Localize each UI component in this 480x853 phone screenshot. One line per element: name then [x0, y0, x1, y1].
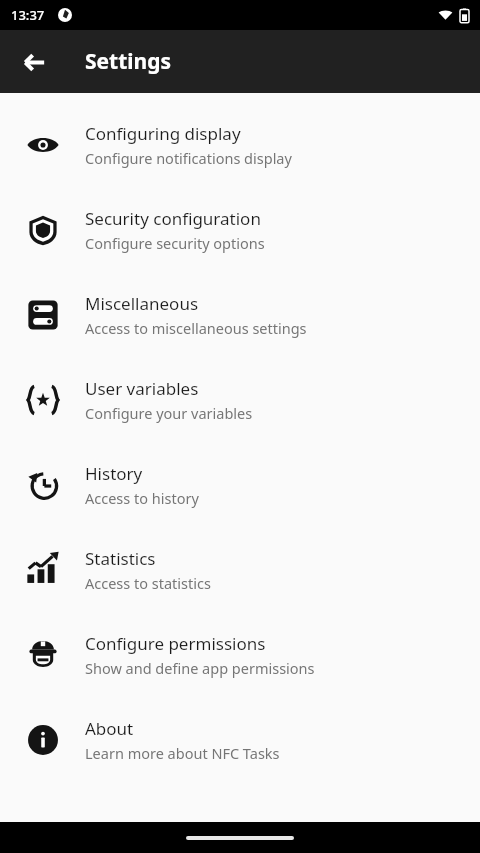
staticText: Access to miscellaneous settings: [85, 318, 307, 338]
button[interactable]: History: [0, 442, 480, 527]
staticText: 13:37: [11, 6, 45, 24]
staticText: Learn more about NFC Tasks: [85, 743, 280, 763]
button[interactable]: Back: [12, 40, 56, 84]
staticText: Access to history: [85, 488, 199, 508]
staticText: History: [85, 462, 143, 485]
button[interactable]: About: [0, 697, 480, 782]
staticText: Statistics: [85, 547, 156, 570]
staticText: Show and define app permissions: [85, 658, 315, 678]
staticText: Miscellaneous: [85, 292, 199, 315]
staticText: Security configuration: [85, 207, 261, 230]
staticText: About: [85, 717, 134, 740]
staticText: Settings: [85, 47, 172, 76]
staticText: Configure permissions: [85, 632, 266, 655]
button[interactable]: Security configuration: [0, 187, 480, 272]
button[interactable]: Statistics: [0, 527, 480, 612]
staticText: Access to statistics: [85, 573, 211, 593]
staticText: User variables: [85, 377, 199, 400]
button[interactable]: User variables: [0, 357, 480, 442]
staticText: Configuring display: [85, 122, 241, 145]
staticText: Configure notifications display: [85, 148, 292, 168]
button[interactable]: Miscellaneous: [0, 272, 480, 357]
staticText: Configure your variables: [85, 403, 253, 423]
staticText: Configure security options: [85, 233, 265, 253]
button[interactable]: Configure permissions: [0, 612, 480, 697]
button[interactable]: Configuring display: [0, 102, 480, 187]
